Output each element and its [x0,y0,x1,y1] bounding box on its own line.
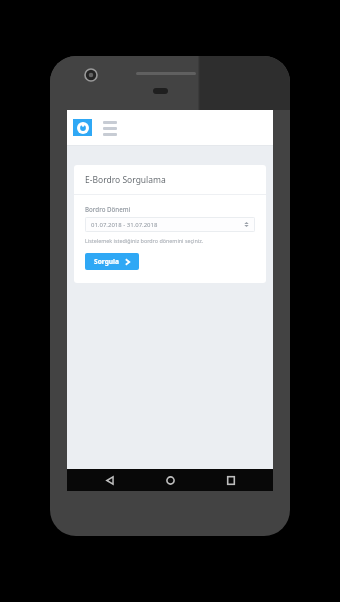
staticText: Sorgula [94,257,120,266]
button[interactable]: Sorgula [85,253,139,270]
staticText: Bordro Dönemi [85,205,131,213]
button[interactable]: Ana sayfa [152,469,188,491]
button[interactable]: Logo [73,119,92,136]
button[interactable]: 01.07.2018 - 31.07.2018 [85,217,255,232]
button[interactable]: Menü [100,119,120,137]
button[interactable]: Geri [92,469,128,491]
button[interactable]: Son kullanılanlar [213,469,249,491]
staticText: Listelemek istediğiniz bordro dönemini s… [85,237,204,244]
staticText: 01.07.2018 - 31.07.2018 [91,221,244,229]
staticText: E-Bordro Sorgulama [85,174,166,186]
